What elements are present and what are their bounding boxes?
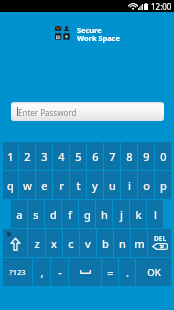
staticText: s: [33, 207, 39, 222]
button[interactable]: t: [70, 171, 86, 199]
button[interactable]: i: [121, 171, 137, 199]
staticText: 5: [75, 149, 82, 164]
staticText: o: [143, 178, 150, 193]
button[interactable]: 3: [36, 142, 52, 170]
staticText: DEL: [154, 234, 167, 243]
button[interactable]: n: [114, 229, 130, 257]
button[interactable]: s: [28, 200, 44, 228]
staticText: y: [92, 178, 98, 193]
staticText: .: [126, 265, 129, 280]
button[interactable]: 1: [3, 142, 18, 170]
button[interactable]: ?123: [3, 258, 32, 286]
button[interactable]: =: [102, 258, 118, 286]
button[interactable]: d: [45, 200, 61, 228]
staticText: k: [135, 207, 142, 222]
button[interactable]: z: [28, 229, 45, 257]
button[interactable]: 9: [138, 142, 154, 170]
button[interactable]: e: [36, 171, 52, 199]
button[interactable]: -: [51, 258, 68, 286]
staticText: 7: [109, 149, 116, 164]
staticText: m: [134, 236, 145, 251]
staticText: x: [51, 236, 57, 251]
button[interactable]: ,: [33, 258, 50, 286]
button[interactable]: a: [11, 200, 27, 228]
button[interactable]: y: [87, 171, 103, 199]
staticText: a: [16, 207, 23, 222]
button[interactable]: c: [63, 229, 79, 257]
staticText: e: [41, 178, 48, 193]
staticText: v: [85, 236, 91, 251]
staticText: ,: [40, 265, 44, 280]
staticText: -: [58, 265, 62, 280]
staticText: =: [107, 265, 114, 280]
button[interactable]: Delete: [148, 229, 171, 257]
staticText: l: [154, 207, 157, 222]
button[interactable]: k: [130, 200, 146, 228]
staticText: 9: [143, 149, 150, 164]
staticText: q: [7, 178, 14, 193]
staticText: 1: [7, 149, 14, 164]
staticText: 12:00: [151, 1, 172, 12]
button[interactable]: 2: [19, 142, 35, 170]
staticText: i: [128, 178, 131, 193]
staticText: c: [68, 236, 74, 251]
button[interactable]: x: [46, 229, 62, 257]
staticText: 3: [41, 149, 48, 164]
staticText: ?123: [9, 267, 26, 277]
staticText: t: [76, 178, 81, 193]
staticText: p: [160, 178, 167, 193]
button[interactable]: 5: [70, 142, 86, 170]
button[interactable]: o: [138, 171, 154, 199]
button[interactable]: 0: [155, 142, 171, 170]
button[interactable]: q: [3, 171, 18, 199]
button[interactable]: 8: [121, 142, 137, 170]
button[interactable]: g: [79, 200, 95, 228]
staticText: u: [109, 178, 116, 193]
button[interactable]: j: [113, 200, 129, 228]
staticText: f: [68, 207, 72, 222]
staticText: d: [50, 207, 57, 222]
staticText: n: [119, 236, 126, 251]
staticText: Secure Work Space: [77, 25, 120, 43]
staticText: z: [34, 236, 40, 251]
button[interactable]: Shift: [3, 229, 27, 257]
button[interactable]: r: [53, 171, 69, 199]
button[interactable]: l: [147, 200, 163, 228]
button[interactable]: 6: [87, 142, 103, 170]
button[interactable]: OK: [136, 258, 171, 286]
staticText: h: [101, 207, 108, 222]
staticText: OK: [147, 266, 161, 279]
button[interactable]: 4: [53, 142, 69, 170]
button[interactable]: Enter Password: [11, 102, 164, 121]
button[interactable]: v: [80, 229, 96, 257]
staticText: 2: [24, 149, 31, 164]
button[interactable]: f: [62, 200, 78, 228]
button[interactable]: b: [97, 229, 113, 257]
staticText: g: [84, 207, 91, 222]
staticText: j: [120, 207, 123, 222]
button[interactable]: u: [104, 171, 120, 199]
button[interactable]: p: [155, 171, 171, 199]
button[interactable]: Space: [69, 258, 101, 286]
button[interactable]: m: [131, 229, 147, 257]
button[interactable]: .: [119, 258, 135, 286]
staticText: b: [102, 236, 109, 251]
button[interactable]: 7: [104, 142, 120, 170]
staticText: 6: [92, 149, 99, 164]
staticText: r: [59, 178, 64, 193]
staticText: 0: [160, 149, 167, 164]
button[interactable]: h: [96, 200, 112, 228]
staticText: Enter Password: [18, 107, 77, 118]
staticText: w: [23, 178, 32, 193]
button[interactable]: w: [19, 171, 35, 199]
staticText: 8: [126, 149, 133, 164]
staticText: 4: [58, 149, 65, 164]
